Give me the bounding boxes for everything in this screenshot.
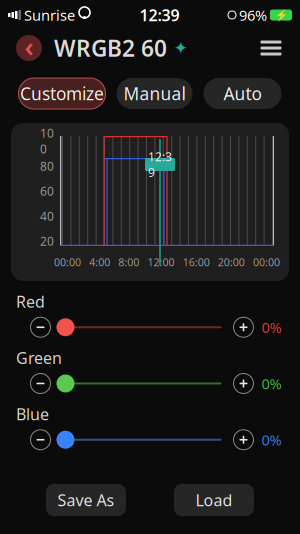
- staticText: Auto: [223, 82, 261, 105]
- staticText: Customize: [20, 82, 104, 105]
- staticText: Green: [16, 347, 62, 368]
- button[interactable]: Decrease Red: [28, 315, 52, 339]
- staticText: WRGB2 60: [54, 33, 167, 63]
- button[interactable]: Customize: [18, 78, 105, 109]
- staticText: 00:00: [253, 255, 280, 269]
- staticText: 16:00: [183, 255, 210, 269]
- button[interactable]: Back: [14, 33, 44, 63]
- button[interactable]: Increase Red: [231, 315, 255, 339]
- button[interactable]: Decrease Blue: [28, 428, 52, 452]
- staticText: 0%: [261, 430, 281, 449]
- staticText: Red: [16, 291, 45, 312]
- staticText: 12:39: [148, 149, 172, 180]
- staticText: ‹: [24, 29, 33, 64]
- button[interactable]: Auto: [203, 78, 281, 109]
- staticText: 20:00: [218, 255, 245, 269]
- staticText: 8:00: [118, 255, 139, 269]
- button[interactable]: Load: [174, 484, 254, 516]
- staticText: 0%: [261, 317, 281, 337]
- staticText: ⚡: [274, 9, 287, 21]
- button[interactable]: Decrease Green: [28, 371, 52, 395]
- button[interactable]: Increase Blue: [231, 428, 255, 452]
- staticText: Save As: [57, 489, 114, 511]
- staticText: Manual: [123, 82, 185, 105]
- button[interactable]: Save As: [46, 484, 126, 516]
- staticText: Sunrise: [24, 5, 75, 25]
- staticText: 20: [40, 233, 54, 249]
- staticText: Blue: [16, 403, 49, 425]
- staticText: 00:00: [54, 255, 81, 269]
- button[interactable]: Manual: [116, 78, 192, 109]
- button[interactable]: Menu: [254, 33, 288, 63]
- staticText: 4:00: [89, 255, 110, 269]
- staticText: 12:39: [139, 4, 179, 26]
- staticText: 12:00: [147, 255, 174, 269]
- staticText: 80: [40, 158, 54, 174]
- staticText: 0%: [261, 374, 281, 393]
- staticText: 96%: [239, 5, 267, 25]
- staticText: 40: [40, 208, 54, 224]
- button[interactable]: Increase Green: [231, 371, 255, 395]
- staticText: 60: [40, 183, 54, 199]
- staticText: 100: [40, 125, 54, 157]
- staticText: Load: [195, 489, 232, 511]
- staticText: ✦: [173, 38, 188, 58]
